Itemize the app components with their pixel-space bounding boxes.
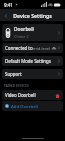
staticText: Doorbell bbox=[14, 26, 34, 33]
button[interactable]: Video Doorbell bbox=[2, 90, 63, 100]
button[interactable]: Connected to bbox=[2, 43, 63, 53]
staticText: Video Doorbell bbox=[5, 92, 55, 98]
staticText: Support bbox=[5, 71, 58, 77]
staticText: Device Settings bbox=[13, 12, 52, 19]
staticText: mid-level bbox=[33, 46, 51, 51]
staticText: Add Doorbell bbox=[11, 103, 38, 109]
staticText: Connected to bbox=[5, 45, 33, 51]
button[interactable]: Support bbox=[2, 69, 63, 79]
button[interactable]: Remove device bbox=[55, 93, 60, 98]
button[interactable]: Add Doorbell bbox=[2, 101, 63, 111]
button[interactable]: Doorbell bbox=[2, 24, 63, 41]
staticText: PAIRED DEVICES bbox=[4, 84, 29, 88]
staticText: 9:41 bbox=[4, 2, 13, 8]
button[interactable]: Back bbox=[0, 10, 11, 21]
button[interactable]: Default Mode Settings bbox=[2, 56, 63, 66]
staticText: Chime 2 bbox=[14, 34, 29, 39]
staticText: Default Mode Settings bbox=[5, 58, 58, 64]
